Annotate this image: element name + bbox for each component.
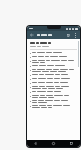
button[interactable]: Recent apps (62, 140, 80, 147)
button[interactable] (30, 60, 77, 63)
button[interactable]: Back (29, 32, 35, 38)
button[interactable]: Back (27, 140, 44, 147)
button[interactable] (30, 100, 77, 103)
button[interactable] (37, 34, 65, 36)
button[interactable]: Bookmark (65, 32, 71, 38)
button[interactable] (30, 69, 77, 72)
button[interactable] (30, 105, 77, 108)
button[interactable] (30, 74, 77, 76)
button[interactable]: Home (44, 140, 62, 147)
button[interactable] (30, 78, 77, 80)
button[interactable] (30, 82, 77, 84)
button[interactable] (30, 52, 77, 54)
button[interactable] (30, 65, 77, 67)
button[interactable] (30, 95, 77, 98)
button[interactable] (30, 86, 77, 89)
button[interactable] (30, 91, 77, 93)
button[interactable]: More options (72, 32, 78, 38)
button[interactable] (30, 56, 77, 58)
